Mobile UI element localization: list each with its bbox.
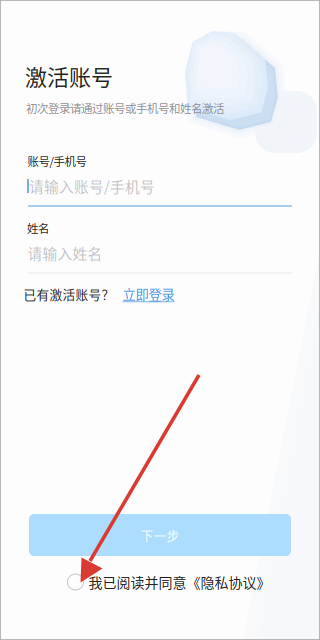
staticText: 已有激活账号？	[23, 285, 114, 303]
button[interactable]: 下一步	[29, 514, 291, 556]
staticText: 立即登录	[122, 284, 174, 304]
staticText: 姓名	[27, 220, 49, 236]
button[interactable]: 立即登录	[122, 284, 174, 304]
staticText: 下一步	[140, 526, 179, 544]
button[interactable]: 我已阅读并同意《隐私协议》	[67, 572, 270, 592]
staticText: 初次登录请通过账号或手机号和姓名激活	[26, 100, 224, 116]
staticText: 请输入姓名	[27, 242, 102, 264]
staticText: 激活账号	[25, 60, 113, 92]
staticText: 请输入账号/手机号	[29, 175, 155, 197]
staticText: 我已阅读并同意《隐私协议》	[88, 572, 270, 592]
staticText: 账号/手机号	[27, 153, 86, 169]
